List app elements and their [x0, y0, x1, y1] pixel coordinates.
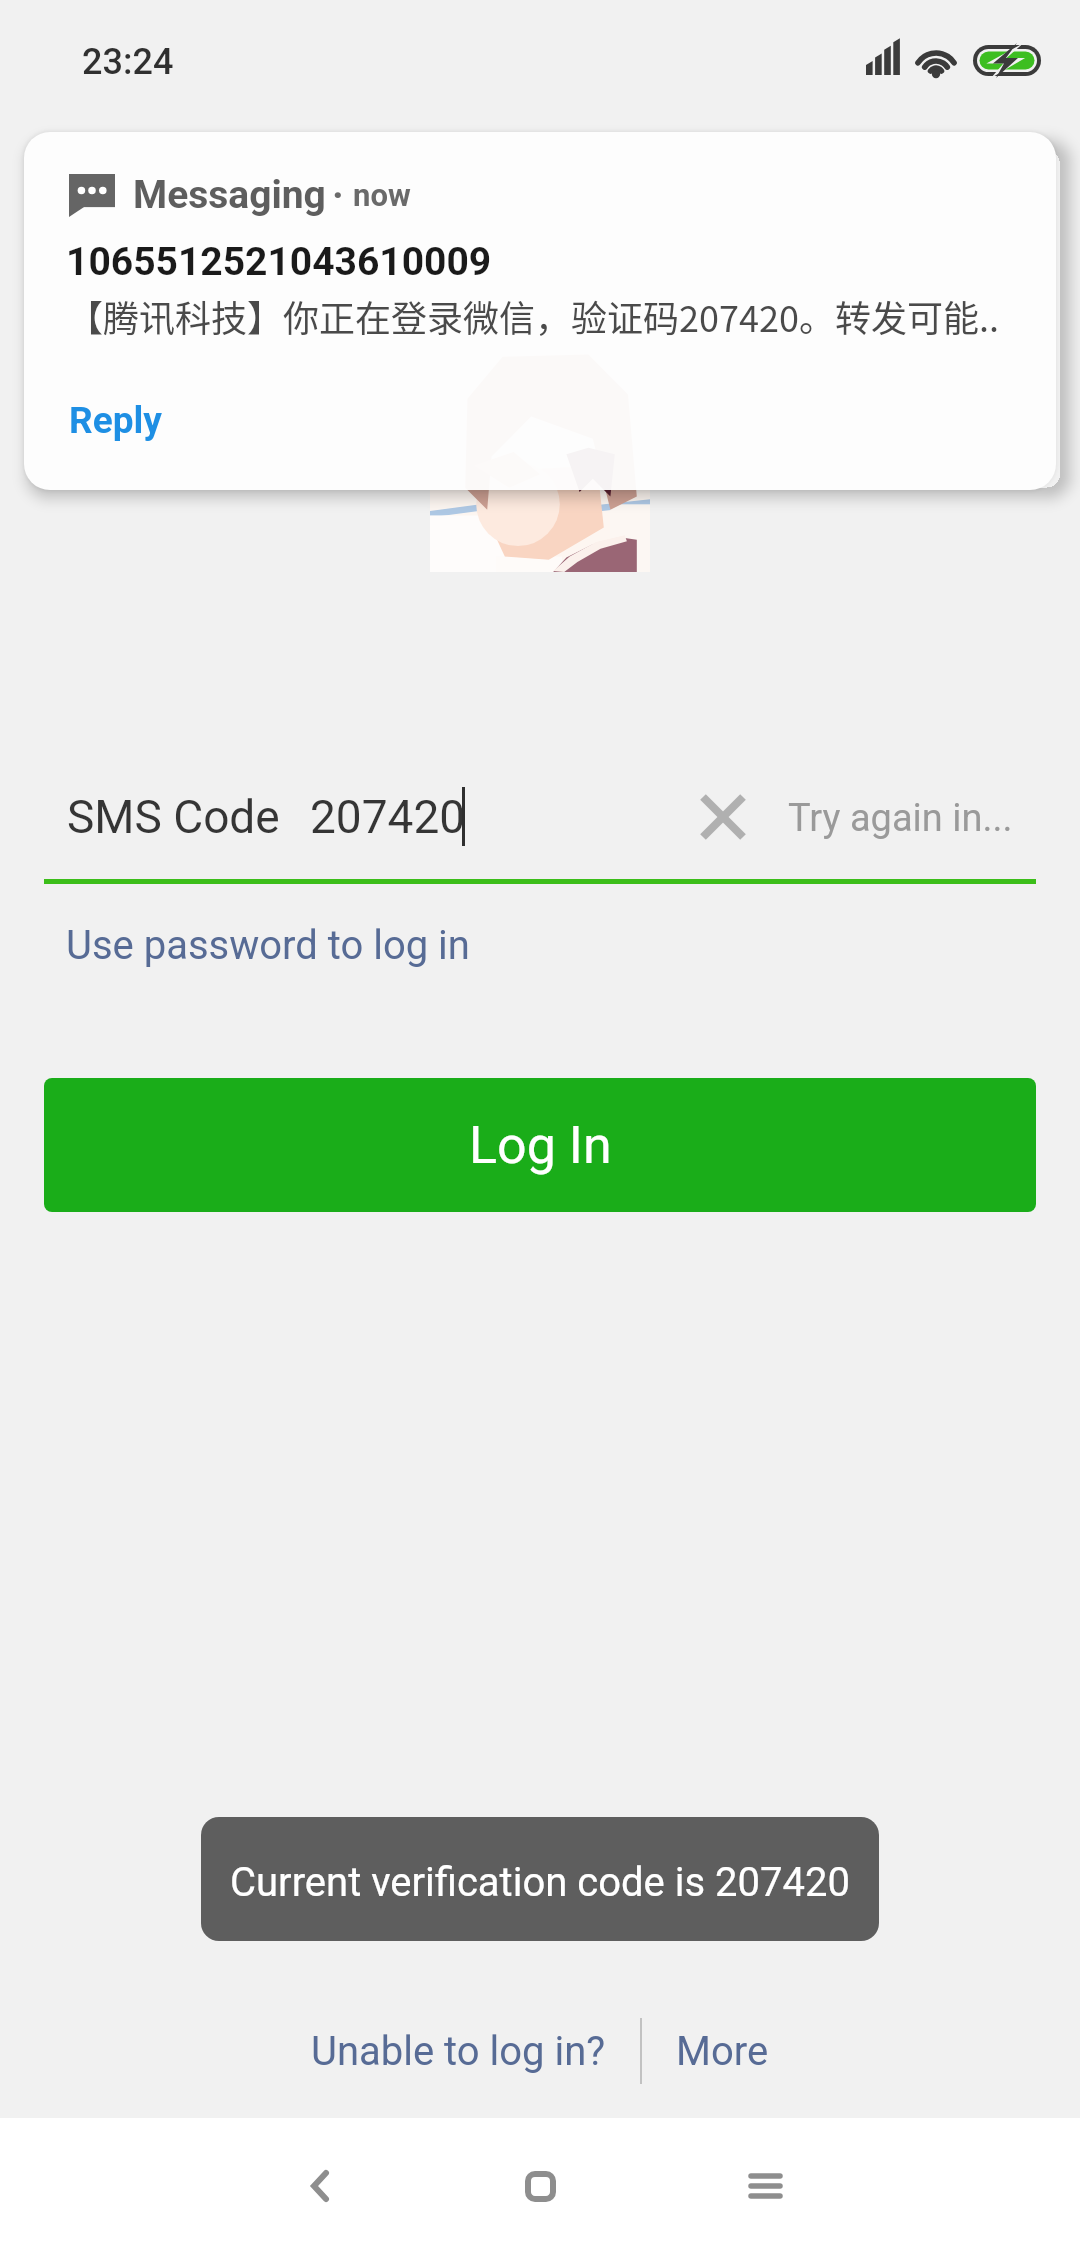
- staticText: Reply: [69, 399, 162, 442]
- staticText: Log In: [469, 1115, 612, 1176]
- button[interactable]: Home: [480, 2136, 600, 2236]
- staticText: SMS Code: [67, 790, 280, 844]
- staticText: now: [353, 177, 411, 213]
- button[interactable]: Back: [260, 2136, 380, 2236]
- staticText: Try again in...: [788, 796, 1013, 841]
- staticText: Current verification code is 207420: [230, 1859, 850, 1906]
- staticText: 【腾讯科技】你正在登录微信，验证码207420。转发可能..: [67, 290, 999, 342]
- staticText: 23:24: [82, 41, 174, 83]
- button[interactable]: Clear: [683, 777, 763, 857]
- button[interactable]: Messaging: [24, 132, 1056, 490]
- button[interactable]: Log In: [44, 1078, 1036, 1212]
- button[interactable]: Use password to log in: [66, 922, 470, 969]
- staticText: Messaging: [133, 172, 326, 218]
- button[interactable]: Unable to log in?: [299, 2016, 618, 2087]
- staticText: Unable to log in?: [311, 2028, 606, 2075]
- button[interactable]: Reply: [69, 399, 162, 442]
- staticText: ·: [332, 172, 344, 218]
- staticText: 207420: [310, 790, 466, 844]
- staticText: 1065512521043610009: [66, 239, 492, 285]
- button[interactable]: More: [664, 2016, 781, 2087]
- button[interactable]: Recent apps: [705, 2136, 825, 2236]
- staticText: More: [676, 2028, 769, 2075]
